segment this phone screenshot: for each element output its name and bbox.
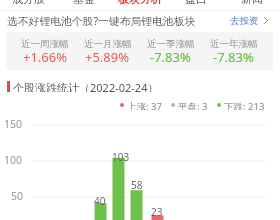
staticText: 58 <box>131 178 143 192</box>
button[interactable]: 近一季涨幅 <box>139 32 202 70</box>
button[interactable]: 新闻 <box>224 0 280 6</box>
staticText: 新闻 <box>241 0 263 6</box>
button[interactable]: 上涨: 37 <box>120 100 162 110</box>
staticText: 板块分析 <box>118 0 162 6</box>
staticText: 近一季涨幅 <box>147 38 195 50</box>
staticText: 上涨: 37 <box>127 100 162 110</box>
staticText: -7.83% <box>213 48 254 66</box>
button[interactable]: 下跌: 213 <box>217 100 265 110</box>
staticText: 103 <box>112 150 130 164</box>
staticText: 近一月涨幅 <box>84 38 132 50</box>
staticText: 近一年涨幅 <box>210 38 258 50</box>
staticText: 下跌: 213 <box>224 100 265 110</box>
staticText: 盘口 <box>185 0 207 6</box>
staticText: +1.66% <box>23 48 68 66</box>
button[interactable]: 近一月涨幅 <box>76 32 139 70</box>
staticText: 平盘: 3 <box>178 100 208 110</box>
button[interactable]: 盘口 <box>168 0 224 6</box>
staticText: 150 <box>4 117 23 131</box>
button[interactable]: 板块分析 <box>112 0 168 6</box>
staticText: 50 <box>11 189 24 203</box>
button[interactable]: 选不好锂电池个股?一键布局锂电池板块 <box>0 11 280 32</box>
button[interactable]: 平盘: 3 <box>171 100 208 110</box>
staticText: 基金 <box>73 0 95 6</box>
staticText: 23 <box>151 205 163 219</box>
button[interactable]: 基金 <box>56 0 112 6</box>
staticText: -7.83% <box>150 48 191 66</box>
staticText: 个股涨跌统计（2022-02-24） <box>13 80 159 92</box>
staticText: 选不好锂电池个股?一键布局锂电池板块 <box>7 13 196 28</box>
button[interactable]: 近一周涨幅 <box>14 32 76 70</box>
button[interactable]: 成分股 <box>0 0 56 6</box>
staticText: 40 <box>94 194 106 208</box>
staticText: 近一周涨幅 <box>21 38 69 50</box>
staticText: +5.89% <box>85 48 130 66</box>
staticText: 去投资 <box>230 15 259 27</box>
staticText: 100 <box>4 153 23 167</box>
button[interactable]: 近一年涨幅 <box>202 32 265 70</box>
staticText: 成分股 <box>12 0 45 6</box>
